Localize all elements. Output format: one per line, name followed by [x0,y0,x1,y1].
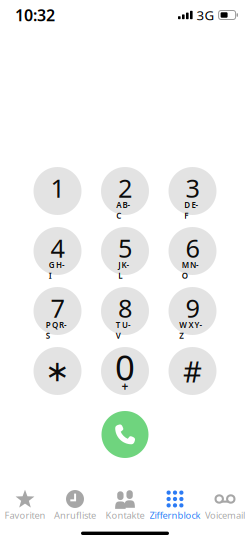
staticText: 0 [115,344,135,390]
button[interactable]: 1 [33,167,81,215]
staticText: DEF [184,200,201,210]
staticText: 5 [118,231,132,265]
button[interactable]: 3 [168,167,216,215]
staticText: 1 [50,171,64,205]
staticText: MNO [182,260,203,270]
button[interactable]: # [168,347,216,395]
button[interactable]: Anrufliste [50,478,100,542]
staticText: 7 [50,291,64,325]
button[interactable]: Anrufen [101,411,148,458]
staticText: Anrufliste [54,509,96,521]
staticText: ABC [116,200,134,210]
staticText: Kontakte [105,509,144,521]
staticText: 3G [197,6,215,24]
staticText: 4 [50,231,64,265]
button[interactable]: 2 [101,167,149,215]
staticText: JKL [118,260,132,270]
staticText: WXYZ [179,320,206,330]
button[interactable]: 4 [33,227,81,275]
staticText: ∗ [45,354,70,388]
button[interactable]: Voicemail [200,478,250,542]
button[interactable]: Ziffernblock [150,478,200,542]
staticText: 8 [118,291,132,325]
staticText: # [183,351,202,390]
staticText: 6 [185,231,199,265]
button[interactable]: 0 [101,347,149,395]
button[interactable]: Kontakte [100,478,150,542]
staticText: + [121,378,128,394]
staticText: 10:32 [15,4,55,26]
button[interactable]: 5 [101,227,149,275]
button[interactable]: 9 [168,287,216,335]
button[interactable]: 7 [33,287,81,335]
staticText: 2 [118,171,132,205]
staticText: PQRS [46,320,69,330]
staticText: Voicemail [205,509,245,521]
button[interactable]: Favoriten [0,478,50,542]
staticText: Ziffernblock [149,509,200,521]
staticText: TUV [116,320,134,330]
button[interactable]: 8 [101,287,149,335]
button[interactable]: ∗ [33,347,81,395]
button[interactable]: 6 [168,227,216,275]
staticText: 3 [185,171,199,205]
staticText: GHI [49,260,66,270]
staticText: 9 [185,291,199,325]
staticText: Favoriten [4,509,45,521]
